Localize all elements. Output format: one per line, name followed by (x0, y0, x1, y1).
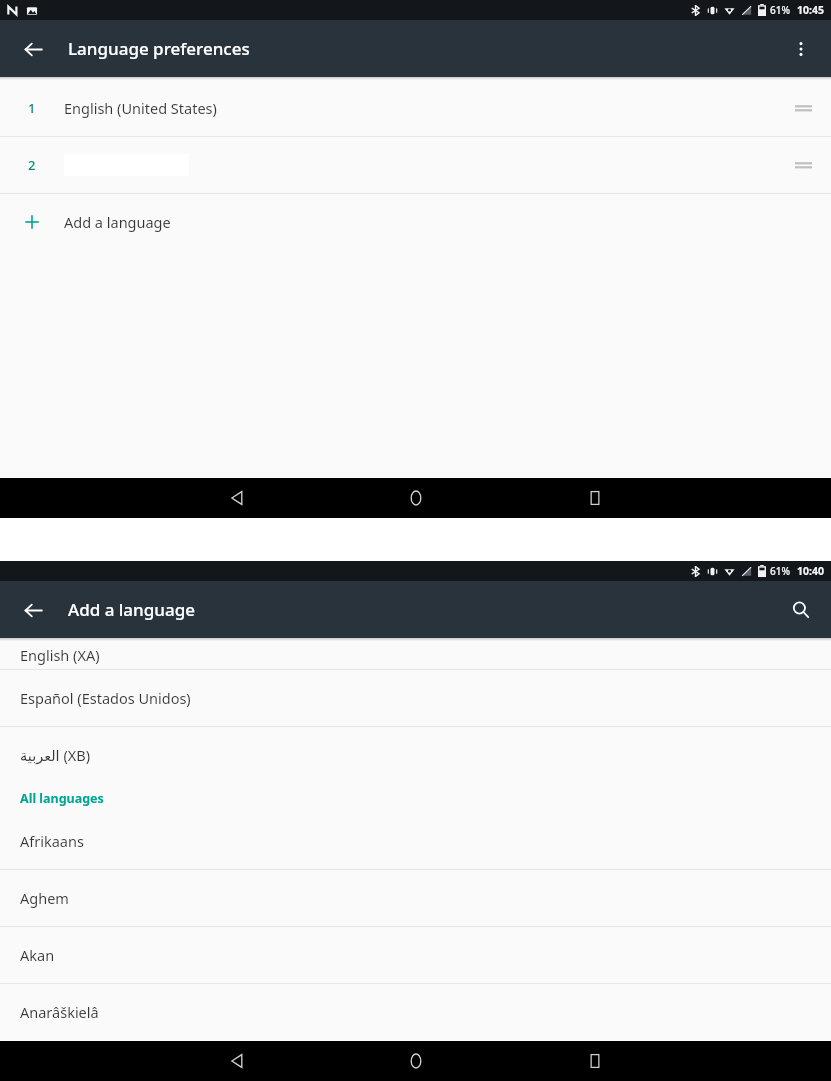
staticText: 10:45 (797, 3, 824, 17)
staticText: Add a language (64, 212, 171, 232)
staticText: 1 (28, 99, 36, 117)
button[interactable]: 2 (0, 137, 831, 193)
staticText: 61% (770, 3, 790, 17)
button[interactable]: More options (781, 29, 821, 69)
button[interactable]: Back (217, 478, 257, 518)
button[interactable]: Back (217, 1041, 257, 1081)
staticText: English (United States) (64, 98, 217, 118)
staticText: 10:40 (797, 564, 824, 578)
button[interactable]: Aghem (0, 870, 831, 926)
staticText: English (XA) (20, 645, 100, 665)
button[interactable]: Reorder (775, 80, 831, 136)
staticText: All languages (20, 790, 104, 807)
button[interactable]: Search (781, 590, 821, 630)
staticText: Afrikaans (20, 831, 84, 851)
staticText: Aghem (20, 888, 69, 908)
button[interactable]: Add a language (0, 194, 831, 250)
staticText: Akan (20, 945, 55, 965)
staticText: Add a language (68, 598, 195, 621)
button[interactable]: Home (396, 478, 436, 518)
staticText: Language preferences (68, 37, 250, 60)
button[interactable]: Back (14, 30, 52, 68)
button[interactable]: Akan (0, 927, 831, 983)
button[interactable]: العربية (XB) (0, 727, 831, 783)
button[interactable]: Anarâškielâ (0, 984, 831, 1040)
button[interactable]: 1 (0, 80, 831, 136)
button[interactable]: Español (Estados Unidos) (0, 670, 831, 726)
staticText: 61% (770, 564, 790, 578)
button[interactable]: Recents (575, 478, 615, 518)
button[interactable]: Back (14, 591, 52, 629)
staticText: Español (Estados Unidos) (20, 688, 191, 708)
button[interactable]: Reorder (775, 137, 831, 193)
button[interactable]: Home (396, 1041, 436, 1081)
staticText: 2 (28, 156, 36, 174)
button[interactable]: Recents (575, 1041, 615, 1081)
staticText: Anarâškielâ (20, 1002, 99, 1022)
staticText: العربية (XB) (20, 745, 91, 765)
button[interactable]: English (XA) (0, 641, 831, 669)
button[interactable]: Afrikaans (0, 813, 831, 869)
